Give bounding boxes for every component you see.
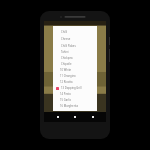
staticText: 16 Margherita <box>60 104 78 108</box>
button[interactable]: 14 Pesto <box>53 91 97 97</box>
button[interactable]: 12 Ricotta <box>53 79 97 85</box>
staticText: Tahini <box>61 50 69 54</box>
staticText: 11 Orangino <box>60 74 76 78</box>
button[interactable]: 10 White <box>53 67 97 73</box>
other: Selected <box>56 87 59 90</box>
staticText: Cheese <box>61 37 71 41</box>
button[interactable]: Home <box>71 113 79 121</box>
button[interactable]: Back <box>54 113 62 121</box>
button[interactable]: Selected <box>53 85 97 91</box>
staticText: 13 Dopping Grill <box>61 86 82 90</box>
button[interactable]: Chickpea <box>53 55 97 61</box>
button[interactable]: Cheese <box>53 35 97 42</box>
staticText: Chilli <box>61 30 68 34</box>
button[interactable]: Tahini <box>53 49 97 55</box>
staticText: Chickpea <box>61 56 73 60</box>
staticText: Chipotle <box>61 62 72 66</box>
staticText: 12 Ricotta <box>60 80 73 84</box>
button[interactable]: 11 Orangino <box>53 73 97 79</box>
staticText: Chilli Flakes <box>61 44 76 48</box>
staticText: 10 White <box>60 68 72 72</box>
staticText: 15 Garlic <box>60 98 72 102</box>
button[interactable]: 15 Garlic <box>53 97 97 103</box>
button[interactable]: Recent apps <box>89 113 97 121</box>
button[interactable]: Chilli <box>53 28 97 35</box>
button[interactable]: 16 Margherita <box>53 103 97 109</box>
staticText: 14 Pesto <box>60 92 71 96</box>
button[interactable]: Chipotle <box>53 61 97 67</box>
button[interactable]: Chilli Flakes <box>53 42 97 49</box>
